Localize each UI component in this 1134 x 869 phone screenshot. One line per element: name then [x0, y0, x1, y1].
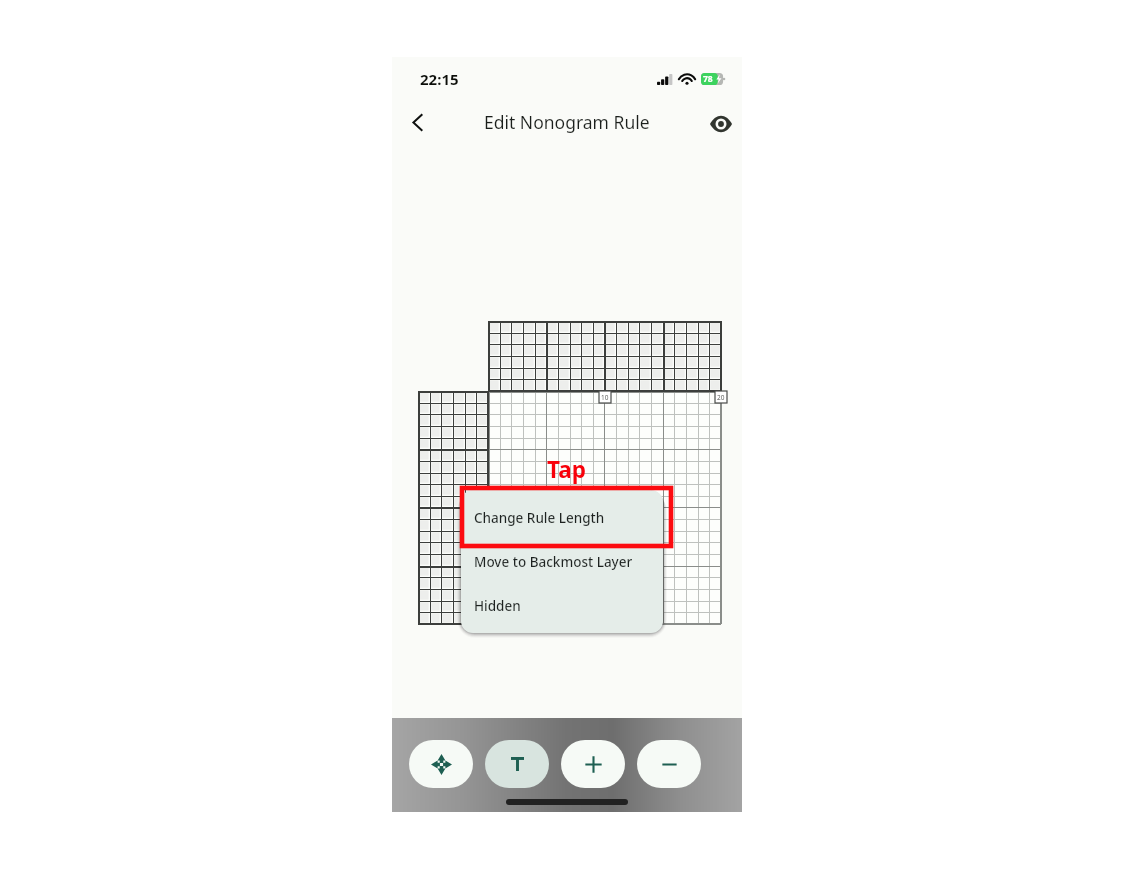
- button[interactable]: Move to Backmost Layer: [461, 540, 663, 583]
- button[interactable]: Text: [485, 740, 549, 788]
- button[interactable]: Change Rule Length: [461, 490, 663, 545]
- button[interactable]: Add: [561, 740, 625, 788]
- button[interactable]: Hidden: [461, 583, 663, 628]
- button[interactable]: Back: [404, 109, 430, 135]
- staticText: 10: [601, 393, 609, 402]
- staticText: Hidden: [474, 597, 521, 615]
- button[interactable]: Preview: [708, 111, 734, 137]
- staticText: Edit Nonogram Rule: [484, 110, 650, 134]
- button[interactable]: Move: [409, 740, 473, 788]
- button[interactable]: Remove: [637, 740, 701, 788]
- staticText: 20: [717, 393, 725, 402]
- staticText: 22:15: [420, 69, 459, 89]
- staticText: Tap: [547, 454, 586, 485]
- staticText: 78: [703, 73, 713, 85]
- staticText: Move to Backmost Layer: [474, 553, 633, 571]
- staticText: Change Rule Length: [474, 509, 605, 527]
